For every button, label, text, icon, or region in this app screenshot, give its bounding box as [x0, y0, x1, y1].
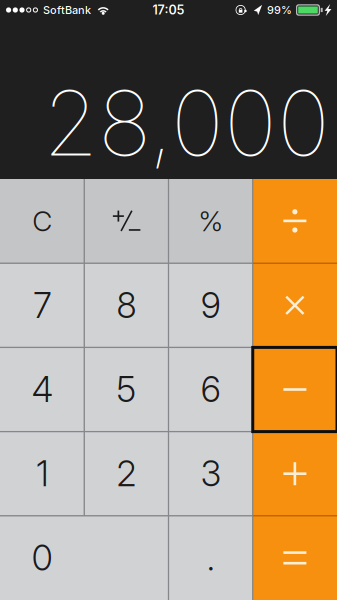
- button[interactable]: Multiply: [253, 263, 337, 347]
- staticText: 17:05: [152, 2, 184, 18]
- staticText: C: [32, 204, 52, 238]
- staticText: 0: [32, 537, 53, 579]
- button[interactable]: 1: [0, 432, 84, 516]
- button[interactable]: .: [168, 516, 253, 600]
- button[interactable]: 7: [0, 263, 84, 347]
- button[interactable]: Subtract: [253, 347, 337, 432]
- button[interactable]: 3: [168, 432, 253, 516]
- button[interactable]: Plus Minus: [84, 179, 168, 263]
- button[interactable]: 9: [168, 263, 253, 347]
- staticText: .: [207, 537, 215, 579]
- staticText: SoftBank: [43, 3, 91, 17]
- staticText: 1: [36, 453, 48, 495]
- staticText: 2: [116, 453, 136, 495]
- staticText: 99%: [267, 3, 292, 17]
- button[interactable]: Add: [253, 432, 337, 516]
- staticText: 3: [201, 453, 221, 495]
- button[interactable]: %: [168, 179, 253, 263]
- staticText: 4: [32, 368, 53, 410]
- button[interactable]: 2: [84, 432, 168, 516]
- staticText: %: [198, 204, 223, 238]
- button[interactable]: 8: [84, 263, 168, 347]
- staticText: 8: [116, 284, 136, 326]
- staticText: 5: [116, 368, 136, 410]
- staticText: 28,000: [43, 69, 330, 177]
- staticText: 6: [201, 368, 221, 410]
- button[interactable]: C: [0, 179, 84, 263]
- button[interactable]: Divide: [253, 179, 337, 263]
- button[interactable]: Equals: [253, 516, 337, 600]
- button[interactable]: 0: [0, 516, 168, 600]
- button[interactable]: 5: [84, 347, 168, 432]
- button[interactable]: 6: [168, 347, 253, 432]
- staticText: 7: [33, 284, 51, 326]
- button[interactable]: 4: [0, 347, 84, 432]
- staticText: 9: [201, 284, 221, 326]
